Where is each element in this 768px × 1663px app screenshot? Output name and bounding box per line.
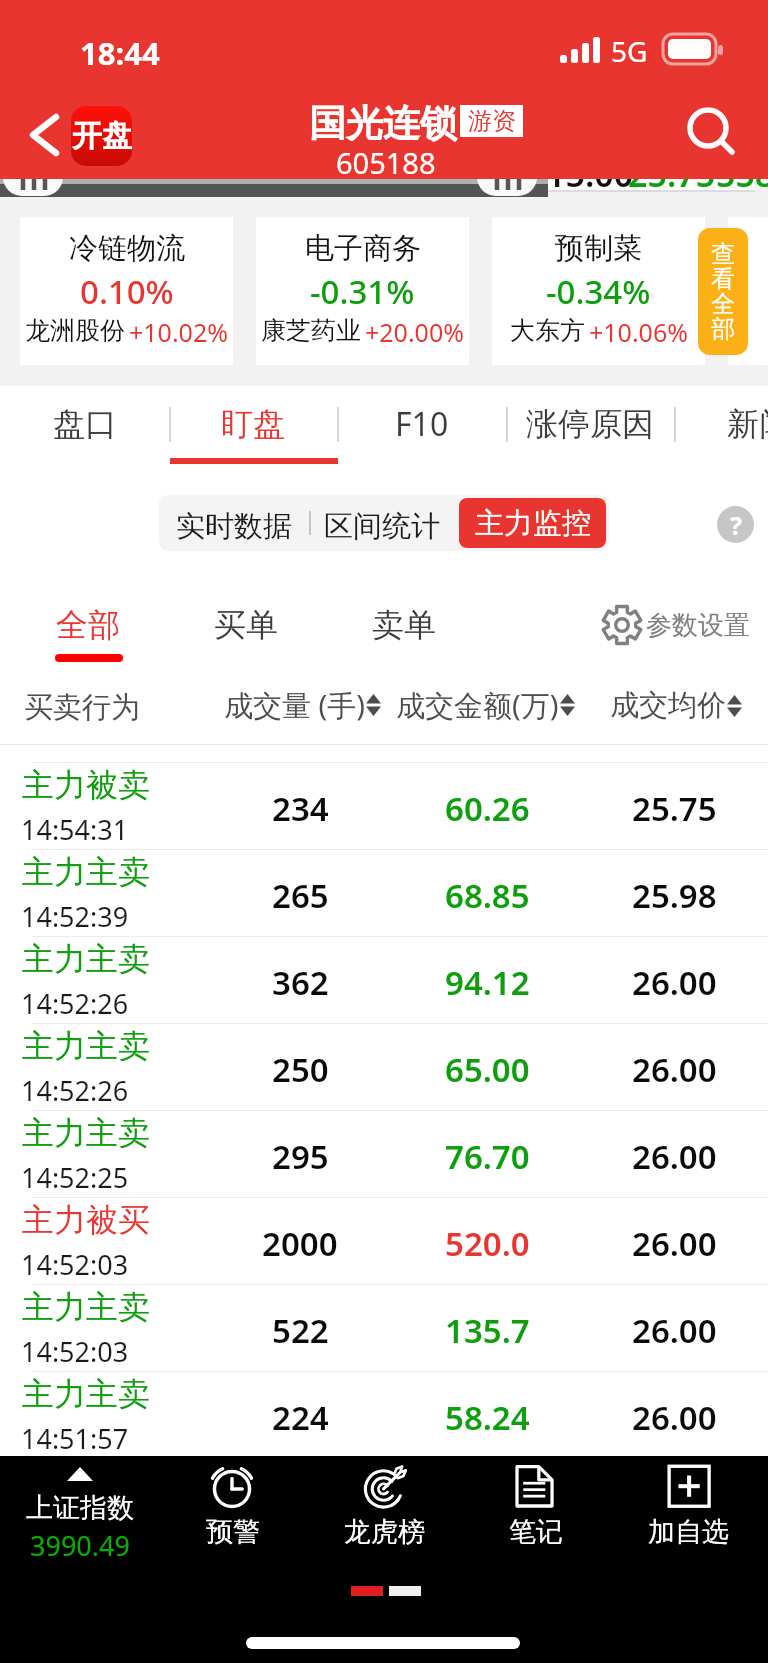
staticText: 龙虎榜 — [344, 1515, 425, 1549]
button[interactable]: 加自选 — [612, 1456, 765, 1566]
button[interactable]: 全部 — [32, 575, 144, 665]
button[interactable]: 上证指数 — [3, 1456, 156, 1566]
staticText: 买卖行为 — [24, 689, 140, 726]
button[interactable]: 冷链物流 — [20, 217, 233, 365]
button[interactable]: 成交量 (手) — [208, 675, 398, 735]
button[interactable]: 主力主卖 — [0, 1267, 768, 1354]
button[interactable]: 成交金额(万) — [391, 675, 581, 735]
staticText: 18:44 — [80, 32, 160, 74]
staticText: 卖单 — [372, 605, 436, 645]
staticText: 0.10% — [80, 269, 174, 314]
staticText: 参数设置 — [646, 609, 750, 642]
staticText: 14:51:57 — [21, 1420, 129, 1457]
staticText: 94.12 — [445, 960, 530, 1005]
button[interactable]: 查 看 全 部 — [698, 228, 748, 355]
button[interactable]: 主力被卖 — [0, 745, 768, 832]
button[interactable]: Back — [16, 107, 72, 163]
button[interactable]: 主力监控 — [459, 498, 606, 548]
staticText: -0.34% — [546, 269, 651, 314]
button[interactable]: Search — [686, 106, 738, 158]
staticText: 5582 — [716, 151, 768, 197]
staticText: 14:52:03 — [21, 1246, 129, 1283]
staticText: 5G — [611, 32, 648, 70]
staticText: ? — [730, 508, 742, 542]
staticText: +10.02% — [129, 315, 228, 349]
staticText: 主力主卖 — [22, 939, 150, 979]
staticText: 全部 — [56, 605, 120, 645]
staticText: 295 — [272, 1134, 329, 1179]
button[interactable]: 盘口 — [0, 386, 169, 466]
staticText: 250 — [272, 1047, 329, 1092]
staticText: 龙洲股份 — [25, 315, 125, 346]
button[interactable]: F10 — [337, 386, 506, 466]
button[interactable]: 东方 — [728, 217, 768, 365]
staticText: 25.75 — [628, 151, 716, 197]
button[interactable]: 主力主卖 — [0, 832, 768, 919]
button[interactable]: 龙虎榜 — [308, 1456, 461, 1566]
button[interactable]: 盯盘 — [168, 386, 337, 466]
staticText: 15:00 — [546, 151, 634, 197]
button[interactable]: 涨停原因 — [505, 386, 674, 466]
button[interactable]: 参数设置 — [601, 600, 750, 650]
staticText: 234 — [272, 786, 329, 831]
staticText: 224 — [272, 1395, 329, 1440]
button[interactable]: 主力主卖 — [0, 1006, 768, 1093]
button[interactable] — [310, 495, 458, 551]
button[interactable]: 笔记 — [459, 1456, 612, 1566]
button[interactable]: 成交均价 — [581, 675, 768, 735]
staticText: 2000 — [262, 1221, 338, 1266]
button[interactable]: 买单 — [190, 575, 302, 665]
staticText: 盘口 — [53, 404, 117, 444]
staticText: 68.85 — [445, 873, 530, 918]
staticText: 电子商务 — [305, 230, 421, 267]
button[interactable]: 主力被买 — [0, 1180, 768, 1267]
button[interactable]: 新闻 — [674, 386, 768, 466]
button[interactable]: Help — [717, 506, 754, 543]
staticText: 26.00 — [632, 1134, 717, 1179]
staticText: 25.98 — [632, 873, 717, 918]
staticText: 康芝药业 — [261, 315, 361, 346]
button[interactable]: 开盘 — [71, 106, 132, 166]
staticText: 预警 — [206, 1515, 260, 1549]
staticText: +10.06% — [589, 315, 688, 349]
staticText: 135.7 — [445, 1308, 530, 1353]
button[interactable]: 卖单 — [348, 575, 460, 665]
staticText: 522 — [272, 1308, 329, 1353]
staticText: 上证指数 — [26, 1491, 134, 1525]
staticText: 主力主卖 — [22, 1374, 150, 1414]
staticText: 主力监控 — [475, 505, 591, 542]
staticText: 成交金额(万) — [396, 685, 559, 725]
staticText: 大东方 — [510, 315, 585, 346]
staticText: 区间统计 — [324, 508, 440, 545]
staticText: 26.00 — [632, 1395, 717, 1440]
staticText: 冷链物流 — [69, 230, 185, 267]
staticText: F10 — [395, 402, 449, 446]
staticText: 笔记 — [509, 1515, 563, 1549]
button[interactable]: 预制菜 — [492, 217, 705, 365]
staticText: 成交均价 — [610, 687, 726, 724]
staticText: 25.75 — [632, 786, 717, 831]
staticText: 26.00 — [632, 1221, 717, 1266]
staticText: 买单 — [214, 605, 278, 645]
staticText: 26.00 — [632, 1047, 717, 1092]
staticText: 60.26 — [445, 786, 530, 831]
button[interactable]: 预警 — [156, 1456, 309, 1566]
staticText: 265 — [272, 873, 329, 918]
staticText: 14:52:25 — [21, 1159, 129, 1196]
staticText: 查 看 全 部 — [711, 239, 735, 344]
button[interactable]: 主力主卖 — [0, 919, 768, 1006]
staticText: 盯盘 — [221, 404, 285, 444]
staticText: 362 — [272, 960, 329, 1005]
staticText: 26.00 — [632, 960, 717, 1005]
button[interactable]: 主力主卖 — [0, 1093, 768, 1180]
button[interactable]: 电子商务 — [256, 217, 469, 365]
staticText: 主力被卖 — [22, 765, 150, 805]
staticText: 58.24 — [445, 1395, 530, 1440]
button[interactable]: 主力主卖 — [0, 1354, 768, 1441]
staticText: 预制菜 — [555, 230, 642, 267]
staticText: 65.00 — [445, 1047, 530, 1092]
staticText: 国光连锁 — [309, 100, 457, 147]
button[interactable] — [159, 495, 307, 551]
staticText: 实时数据 — [176, 508, 292, 545]
staticText: 涨停原因 — [526, 404, 654, 444]
